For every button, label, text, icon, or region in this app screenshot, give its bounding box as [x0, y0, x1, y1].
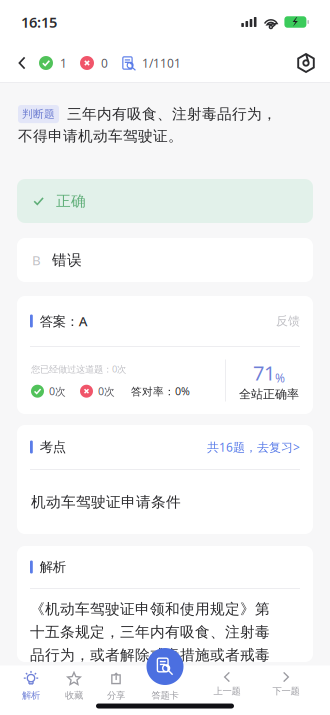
- staticText: 答对率：0%: [131, 384, 190, 398]
- button[interactable]: Settings: [293, 50, 319, 76]
- button[interactable]: 解析: [9, 665, 53, 703]
- button[interactable]: 共16题，去复习>: [207, 439, 300, 455]
- staticText: 1: [60, 55, 67, 71]
- staticText: 答题卡: [151, 690, 178, 701]
- button[interactable]: 上一题: [205, 665, 249, 703]
- staticText: 上一题: [213, 685, 240, 697]
- button[interactable]: 分享: [94, 665, 138, 703]
- button[interactable]: 答题卡: [146, 648, 183, 685]
- staticText: 考点: [40, 439, 66, 455]
- button[interactable]: 收藏: [52, 665, 96, 703]
- staticText: 1/1101: [142, 55, 181, 71]
- button[interactable]: 反馈: [276, 314, 300, 328]
- staticText: 反馈: [276, 314, 300, 328]
- staticText: 正确: [56, 192, 86, 210]
- button[interactable]: 下一题: [264, 665, 308, 703]
- staticText: 下一题: [272, 685, 299, 697]
- staticText: 三年内有吸食、注射毒品行为，: [67, 105, 277, 123]
- staticText: 0次: [49, 384, 66, 398]
- staticText: 十五条规定，三年内有吸食、注射毒: [30, 623, 270, 641]
- staticText: 不得申请机动车驾驶证。: [18, 127, 183, 145]
- button[interactable]: 机动车驾驶证申请条件: [18, 470, 312, 534]
- staticText: 全站正确率: [239, 387, 299, 402]
- staticText: 判断题: [22, 107, 55, 121]
- staticText: 解析: [40, 559, 66, 575]
- staticText: 机动车驾驶证申请条件: [31, 493, 181, 511]
- button[interactable]: Back: [11, 48, 33, 78]
- staticText: 您已经做过这道题：0次: [31, 363, 126, 375]
- button[interactable]: B: [17, 238, 313, 282]
- staticText: 《机动车驾驶证申领和使用规定》第: [30, 600, 270, 618]
- staticText: 答案：A: [40, 312, 88, 330]
- staticText: 16:15: [21, 12, 57, 32]
- staticText: 解析: [22, 690, 40, 701]
- staticText: B: [32, 251, 41, 269]
- staticText: 分享: [107, 690, 125, 701]
- staticText: 71: [253, 359, 275, 386]
- staticText: 0次: [98, 384, 115, 398]
- button[interactable]: 答题卡: [143, 665, 187, 703]
- staticText: 共16题，去复习>: [207, 439, 300, 455]
- staticText: %: [275, 370, 285, 386]
- staticText: 0: [101, 55, 108, 71]
- staticText: 收藏: [65, 690, 83, 701]
- staticText: 错误: [52, 251, 82, 269]
- staticText: 品行为，或者解除戒毒措施或者戒毒: [30, 646, 270, 664]
- button[interactable]: 正确: [17, 179, 313, 223]
